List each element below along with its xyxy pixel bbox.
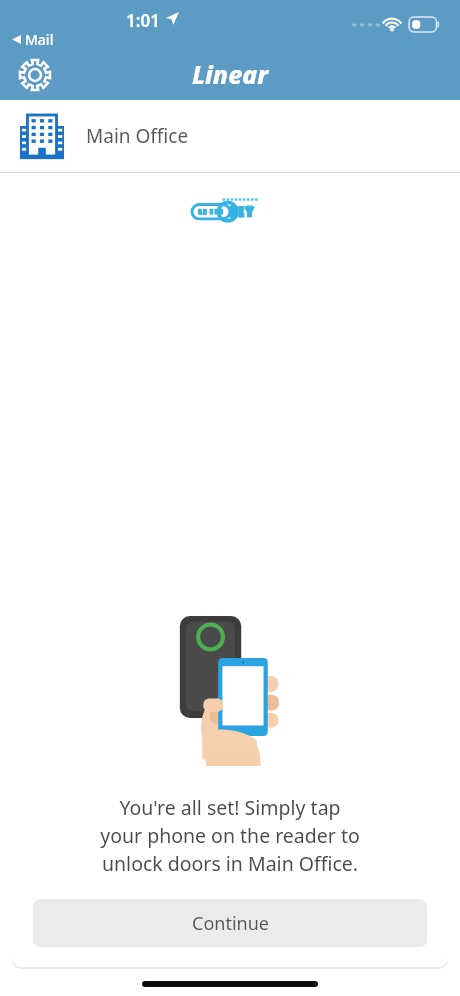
- button[interactable]: Main Office: [0, 100, 460, 172]
- button[interactable]: Settings: [12, 52, 58, 98]
- staticText: Linear: [192, 57, 269, 91]
- staticText: 1:01: [126, 9, 160, 32]
- staticText: Mail: [25, 30, 54, 49]
- staticText: Main Office: [86, 123, 189, 149]
- button[interactable]: Continue: [33, 899, 427, 947]
- button[interactable]: Mail: [10, 29, 56, 50]
- staticText: You're all set! Simply tap your phone on…: [100, 794, 360, 877]
- staticText: Continue: [192, 911, 269, 936]
